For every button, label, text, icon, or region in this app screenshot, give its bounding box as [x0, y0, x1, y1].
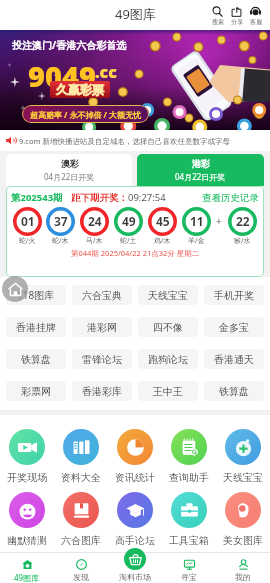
staticText: 港彩网 [87, 321, 117, 334]
button[interactable]: 香港挂牌 [6, 317, 66, 337]
staticText: 金多宝 [219, 321, 249, 334]
button[interactable]: 我的 [216, 553, 270, 582]
staticText: 22 [236, 213, 250, 229]
button[interactable]: 雷锋论坛 [72, 349, 132, 369]
staticText: 澳彩 [61, 158, 79, 169]
button[interactable]: 开奖现场 [0, 429, 54, 484]
staticText: 高手论坛 [115, 534, 155, 547]
staticText: 查看历史记录 [202, 192, 259, 204]
staticText: 猴/水 [234, 236, 251, 246]
button[interactable]: 铁算盘 [6, 349, 66, 369]
button[interactable]: 六合图库 [54, 492, 108, 547]
staticText: 45 [156, 213, 170, 229]
button[interactable]: 搜索 [208, 4, 227, 26]
button[interactable]: 彩票网 [6, 381, 66, 401]
button[interactable]: 金多宝 [204, 317, 264, 337]
staticText: 分享 [231, 18, 243, 26]
staticText: 查询助手 [169, 471, 209, 484]
button[interactable]: 天线宝宝 [138, 285, 198, 305]
button[interactable]: 客服 [246, 4, 265, 26]
staticText: 淘料市场 [119, 572, 151, 582]
button[interactable]: 六合宝典 [72, 285, 132, 305]
button[interactable]: 港彩 [137, 154, 264, 186]
staticText: 24 [88, 213, 102, 229]
button[interactable]: 分享 [227, 4, 246, 26]
staticText: 11 [190, 213, 204, 229]
staticText: 彩票网 [21, 385, 51, 398]
staticText: 04月22日开奖 [175, 171, 226, 182]
staticText: 天线宝宝 [148, 289, 188, 302]
staticText: 资料大全 [61, 471, 101, 484]
staticText: + [216, 214, 222, 228]
staticText: 王中王 [153, 385, 183, 398]
button[interactable]: 澳彩 [6, 154, 132, 186]
button[interactable]: 跑狗论坛 [138, 349, 198, 369]
staticText: 118图库 [17, 288, 55, 302]
staticText: 09:27:54 [128, 191, 166, 204]
button[interactable]: 查看历史记录 [202, 192, 259, 204]
staticText: .cc [95, 61, 117, 83]
button[interactable]: 王中王 [138, 381, 198, 401]
staticText: 四不像 [153, 321, 183, 334]
staticText: 幽默猜测 [7, 534, 47, 547]
staticText: 寻宝 [181, 572, 197, 582]
staticText: 天线宝宝 [223, 471, 263, 484]
button[interactable]: 资讯统计 [108, 429, 162, 484]
staticText: 港彩 [192, 158, 210, 169]
button[interactable]: 查询助手 [162, 429, 216, 484]
staticText: 香港彩库 [82, 385, 122, 398]
staticText: 发现 [73, 572, 89, 582]
staticText: 37 [54, 213, 68, 229]
staticText: 跑狗论坛 [148, 353, 188, 366]
button[interactable]: 淘料市场 [108, 553, 162, 583]
staticText: 蛇/木 [52, 236, 69, 246]
staticText: 鸡/木 [154, 236, 171, 246]
button[interactable]: 资料大全 [54, 429, 108, 484]
staticText: 资讯统计 [115, 471, 155, 484]
staticText: 六合宝典 [82, 289, 122, 302]
staticText: 超高赔率 / 永不掉倍 / 大额无忧 [30, 109, 141, 120]
button[interactable]: 美女图库 [216, 492, 270, 547]
staticText: 铁算盘 [219, 385, 249, 398]
staticText: 铁算盘 [21, 353, 51, 366]
button[interactable]: 香港通天 [204, 349, 264, 369]
staticText: 49 [122, 213, 136, 229]
button[interactable]: 49图库 [0, 553, 54, 583]
staticText: 马/木 [86, 236, 103, 246]
staticText: 第202543期 [11, 191, 63, 204]
staticText: 搜索 [212, 18, 224, 26]
staticText: 9.com 新增快播进站及自定域名，选择自己喜欢任意数字或字母 [19, 136, 230, 146]
staticText: 投注澳门/香港六合彩首选 [12, 38, 127, 52]
staticText: 49图库 [14, 572, 40, 583]
button[interactable]: 手机开奖 [204, 285, 264, 305]
button[interactable]: 铁算盘 [204, 381, 264, 401]
button[interactable]: 天线宝宝 [216, 429, 270, 484]
staticText: 六合图库 [61, 534, 101, 547]
staticText: 我的 [235, 572, 251, 582]
button[interactable]: 香港彩库 [72, 381, 132, 401]
staticText: 羊/金 [188, 236, 205, 246]
staticText: 04月22日开奖 [44, 171, 95, 182]
button[interactable]: 寻宝 [162, 553, 216, 582]
staticText: 01 [21, 213, 35, 229]
button[interactable]: 四不像 [138, 317, 198, 337]
button[interactable]: 幽默猜测 [0, 492, 54, 547]
button[interactable]: 港彩网 [72, 317, 132, 337]
staticText: 距下期开奖： [71, 192, 128, 204]
staticText: 蛇/火 [19, 236, 36, 246]
staticText: 9049 [28, 56, 96, 95]
staticText: 久赢彩票 [56, 82, 104, 97]
staticText: 工具宝箱 [169, 534, 209, 547]
staticText: 蛇/土 [120, 236, 137, 246]
button[interactable]: 发现 [54, 553, 108, 582]
staticText: 香港通天 [214, 353, 254, 366]
button[interactable]: 118图库 [6, 285, 66, 305]
button[interactable]: 高手论坛 [108, 492, 162, 547]
staticText: 客服 [250, 18, 262, 26]
button[interactable]: 工具宝箱 [162, 492, 216, 547]
staticText: 开奖现场 [7, 471, 47, 484]
button[interactable]: Home [2, 276, 28, 302]
staticText: 雷锋论坛 [82, 353, 122, 366]
staticText: 第044期 2025/04/22 21点32分 星期二 [71, 248, 200, 258]
staticText: 香港挂牌 [16, 321, 56, 334]
